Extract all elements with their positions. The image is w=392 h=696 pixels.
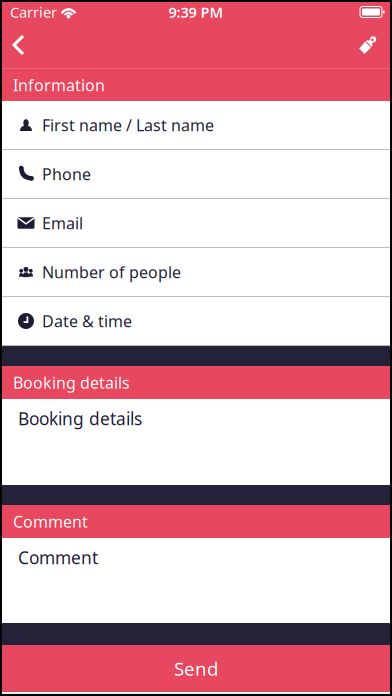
staticText: Number of people [42, 261, 181, 283]
staticText: Booking details [18, 407, 142, 430]
button[interactable]: Send [2, 645, 390, 692]
button[interactable]: Theme [349, 22, 387, 68]
button[interactable]: Email [2, 199, 390, 248]
staticText: Email [42, 212, 83, 234]
button[interactable]: Comment [2, 538, 390, 623]
staticText: Comment [18, 546, 98, 569]
button[interactable]: Booking details [2, 399, 390, 485]
staticText: Send [174, 656, 218, 681]
staticText: Phone [42, 163, 91, 185]
staticText: Comment [13, 511, 88, 532]
button[interactable]: Date & time [2, 297, 390, 346]
staticText: 9:39 PM [168, 2, 223, 22]
button[interactable]: Phone [2, 150, 390, 199]
button[interactable]: Back [2, 22, 35, 68]
staticText: Carrier [10, 2, 57, 22]
staticText: First name / Last name [42, 114, 214, 136]
button[interactable]: First name / Last name [2, 101, 390, 150]
staticText: Booking details [13, 372, 130, 393]
staticText: Information [13, 74, 105, 96]
button[interactable]: Number of people [2, 248, 390, 297]
staticText: Date & time [42, 310, 132, 332]
